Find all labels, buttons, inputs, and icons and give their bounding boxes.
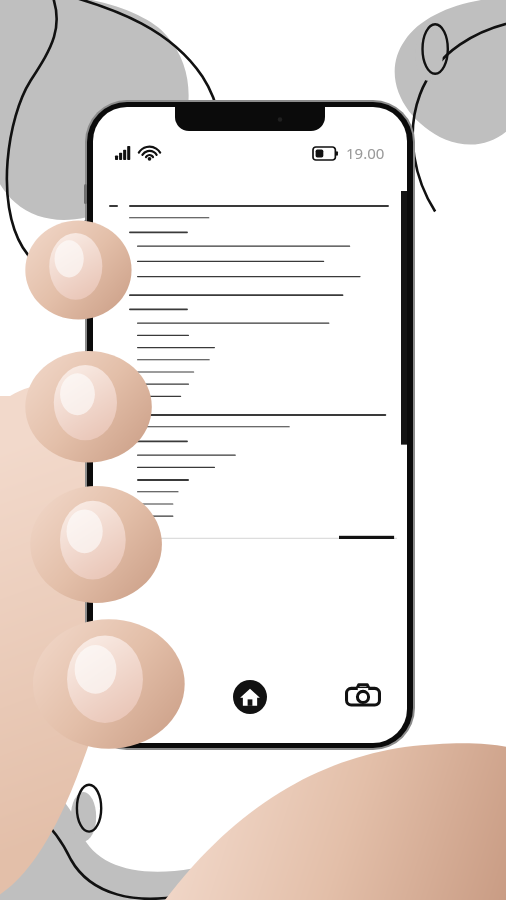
button[interactable]: Back	[117, 677, 157, 717]
button[interactable]: Camera	[343, 677, 383, 717]
button[interactable]: Home	[230, 677, 270, 717]
staticText: 19.00	[346, 143, 385, 163]
